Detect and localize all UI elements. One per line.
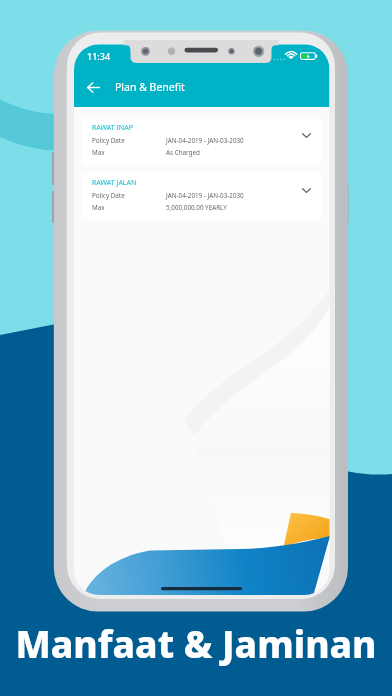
staticText: Max: [92, 148, 105, 157]
staticText: JAN-04-2019 - JAN-03-2030: [166, 136, 244, 145]
staticText: RAWAT INAP: [92, 123, 133, 133]
button[interactable]: RAWAT INAP: [81, 117, 321, 165]
button[interactable]: Expand: [298, 182, 314, 198]
button[interactable]: Expand: [298, 127, 314, 143]
staticText: 11:34: [87, 50, 111, 62]
staticText: Max: [92, 203, 105, 212]
staticText: Plan & Benefit: [115, 80, 185, 94]
staticText: RAWAT JALAN: [92, 178, 137, 188]
staticText: Policy Date: [92, 136, 125, 145]
staticText: Manfaat & Jaminan: [15, 618, 377, 668]
staticText: 5,000,000.00 YEARLY: [166, 203, 227, 212]
staticText: As Charged: [166, 148, 200, 157]
button[interactable]: RAWAT JALAN: [81, 172, 321, 220]
staticText: JAN-04-2019 - JAN-03-2030: [166, 191, 244, 200]
button[interactable]: Back: [80, 74, 106, 100]
staticText: Policy Date: [92, 191, 125, 200]
